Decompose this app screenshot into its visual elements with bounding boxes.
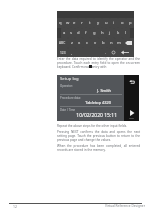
button[interactable]: Backspace bbox=[123, 38, 134, 48]
button[interactable]: f bbox=[82, 28, 90, 38]
button[interactable]: a bbox=[61, 28, 68, 38]
button[interactable]: x bbox=[75, 38, 83, 48]
staticText: 12 bbox=[13, 204, 17, 209]
staticText: Pressing NEXT confirms the data and open… bbox=[57, 130, 140, 142]
button[interactable]: p bbox=[126, 18, 134, 28]
button[interactable]: d bbox=[75, 28, 82, 38]
button[interactable]: 123 bbox=[57, 48, 68, 57]
staticText: Date / Time bbox=[60, 108, 76, 112]
staticText: Operator: bbox=[60, 84, 73, 88]
staticText: q bbox=[59, 20, 62, 26]
staticText: k bbox=[117, 30, 120, 36]
button[interactable]: r bbox=[78, 18, 86, 28]
staticText: l bbox=[125, 30, 127, 36]
staticText: Repeat the above steps for the other inp… bbox=[57, 124, 140, 128]
staticText: u bbox=[105, 20, 108, 26]
staticText: b bbox=[102, 40, 105, 46]
button[interactable]: g bbox=[90, 28, 98, 38]
button[interactable]: i bbox=[110, 18, 118, 28]
staticText: , bbox=[71, 50, 73, 56]
button[interactable]: o bbox=[118, 18, 126, 28]
button[interactable]: l bbox=[122, 28, 130, 38]
button[interactable]: q bbox=[57, 18, 64, 28]
staticText: r bbox=[81, 20, 83, 26]
button[interactable]: ABC bbox=[57, 38, 68, 48]
button[interactable]: m bbox=[115, 38, 123, 48]
staticText: d bbox=[77, 30, 80, 36]
button[interactable]: Emoji bbox=[110, 48, 116, 57]
staticText: o bbox=[121, 20, 124, 26]
staticText: w bbox=[66, 20, 70, 26]
button[interactable]: h bbox=[98, 28, 106, 38]
button[interactable]: s bbox=[68, 28, 75, 38]
staticText: 10/02/2020 15:11 bbox=[60, 112, 117, 119]
button[interactable]: , bbox=[68, 48, 76, 57]
staticText: J. Smith bbox=[60, 88, 111, 93]
staticText: h bbox=[101, 30, 104, 36]
staticText: Procedure data: bbox=[60, 96, 81, 100]
button[interactable]: Back bbox=[124, 75, 139, 88]
button[interactable]: k bbox=[114, 28, 122, 38]
staticText: y bbox=[97, 20, 100, 26]
staticText: ABC bbox=[59, 41, 66, 45]
button[interactable]: v bbox=[91, 38, 99, 48]
staticText: p bbox=[129, 20, 132, 26]
staticText: m bbox=[117, 40, 121, 46]
staticText: g bbox=[93, 30, 96, 36]
staticText: e bbox=[73, 20, 76, 26]
staticText: z bbox=[71, 40, 73, 46]
button[interactable]: e bbox=[71, 18, 78, 28]
button[interactable]: . bbox=[102, 48, 110, 57]
staticText: t bbox=[89, 20, 91, 26]
button[interactable]: b bbox=[99, 38, 107, 48]
staticText: i bbox=[113, 20, 115, 26]
staticText: x bbox=[78, 40, 81, 46]
button[interactable]: n bbox=[107, 38, 115, 48]
staticText: . bbox=[105, 50, 107, 56]
button[interactable]: u bbox=[102, 18, 110, 28]
button[interactable]: w bbox=[64, 18, 71, 28]
staticText: c bbox=[86, 40, 89, 46]
staticText: Virtual Reference Designer bbox=[105, 204, 145, 208]
staticText: Tabletop 4320 bbox=[60, 100, 111, 105]
button[interactable]: c bbox=[83, 38, 91, 48]
staticText: Setup log bbox=[60, 76, 79, 82]
button[interactable]: y bbox=[94, 18, 102, 28]
staticText: a bbox=[63, 30, 66, 36]
staticText: Enter the data required to identify the … bbox=[57, 57, 140, 69]
button[interactable]: j bbox=[106, 28, 114, 38]
staticText: f bbox=[85, 30, 87, 36]
button[interactable]: t bbox=[86, 18, 94, 28]
staticText: When the procedure has been completed, a… bbox=[57, 144, 140, 152]
staticText: s bbox=[70, 30, 73, 36]
button[interactable]: Enter bbox=[116, 48, 134, 57]
button[interactable]: Next bbox=[124, 107, 139, 121]
staticText: n bbox=[110, 40, 113, 46]
staticText: 123 bbox=[60, 51, 66, 55]
staticText: v bbox=[94, 40, 97, 46]
button[interactable]: z bbox=[68, 38, 75, 48]
staticText: j bbox=[109, 30, 111, 36]
staticText: next bbox=[129, 116, 134, 119]
